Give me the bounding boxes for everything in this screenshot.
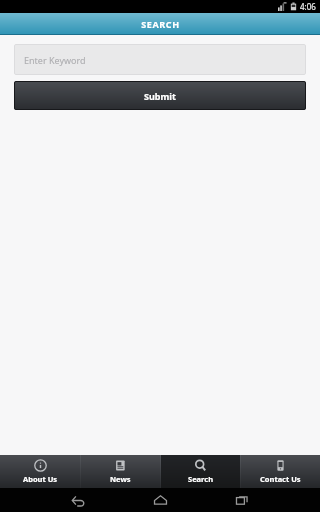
button[interactable]: Recent apps: [229, 491, 255, 509]
button[interactable]: About Us: [0, 455, 80, 488]
button[interactable]: Back: [65, 491, 91, 509]
staticText: Search: [188, 474, 214, 484]
button[interactable]: Contact Us: [241, 455, 320, 488]
staticText: Enter Keyword: [24, 54, 86, 66]
staticText: SEARCH: [141, 18, 180, 30]
staticText: 4:06: [300, 1, 316, 12]
staticText: News: [110, 474, 131, 484]
staticText: Submit: [144, 90, 176, 102]
button[interactable]: Enter Keyword: [14, 44, 306, 75]
button[interactable]: News: [81, 455, 160, 488]
button[interactable]: Search: [161, 455, 240, 488]
staticText: About Us: [23, 474, 58, 484]
button[interactable]: Submit: [14, 81, 306, 110]
button[interactable]: Home: [147, 491, 173, 509]
staticText: Contact Us: [260, 474, 301, 484]
